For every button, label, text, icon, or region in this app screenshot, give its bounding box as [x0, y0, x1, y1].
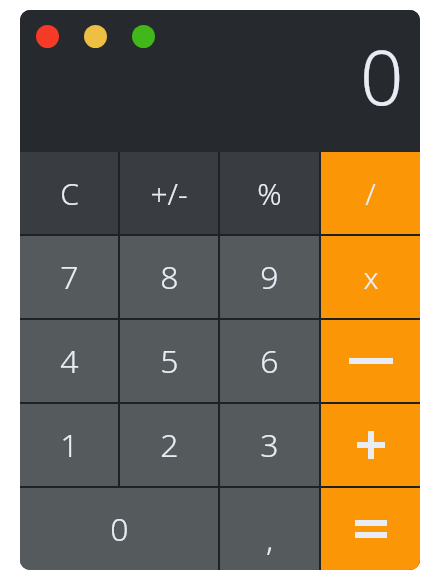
staticText: 5: [160, 339, 179, 383]
button[interactable]: Maximize: [132, 25, 155, 48]
button[interactable]: /: [321, 152, 420, 234]
button[interactable]: x: [321, 236, 420, 318]
staticText: x: [363, 257, 379, 298]
staticText: 8: [160, 255, 179, 299]
button[interactable]: Minus: [321, 320, 420, 402]
staticText: 4: [60, 339, 79, 383]
button[interactable]: 3: [220, 404, 319, 486]
staticText: 7: [60, 255, 79, 299]
button[interactable]: Equals: [321, 488, 420, 570]
button[interactable]: 1: [20, 404, 118, 486]
button[interactable]: 0: [20, 488, 218, 570]
staticText: 1: [60, 423, 79, 467]
button[interactable]: 2: [120, 404, 218, 486]
button[interactable]: 6: [220, 320, 319, 402]
staticText: 3: [260, 423, 279, 467]
button[interactable]: C: [20, 152, 118, 234]
button[interactable]: Close: [36, 25, 59, 48]
staticText: 0: [110, 507, 129, 551]
button[interactable]: 5: [120, 320, 218, 402]
staticText: ,: [266, 517, 274, 561]
staticText: C: [60, 173, 79, 214]
button[interactable]: Decimal separator: [220, 488, 319, 570]
staticText: /: [365, 173, 376, 214]
button[interactable]: +/-: [120, 152, 218, 234]
button[interactable]: 7: [20, 236, 118, 318]
button[interactable]: Minimize: [84, 25, 107, 48]
button[interactable]: 9: [220, 236, 319, 318]
button[interactable]: 8: [120, 236, 218, 318]
button[interactable]: 4: [20, 320, 118, 402]
staticText: 2: [160, 423, 179, 467]
staticText: +/-: [150, 173, 188, 214]
staticText: 0: [360, 24, 404, 128]
staticText: %: [257, 173, 282, 214]
staticText: 9: [260, 255, 279, 299]
button[interactable]: %: [220, 152, 319, 234]
staticText: 6: [260, 339, 279, 383]
button[interactable]: Plus: [321, 404, 420, 486]
